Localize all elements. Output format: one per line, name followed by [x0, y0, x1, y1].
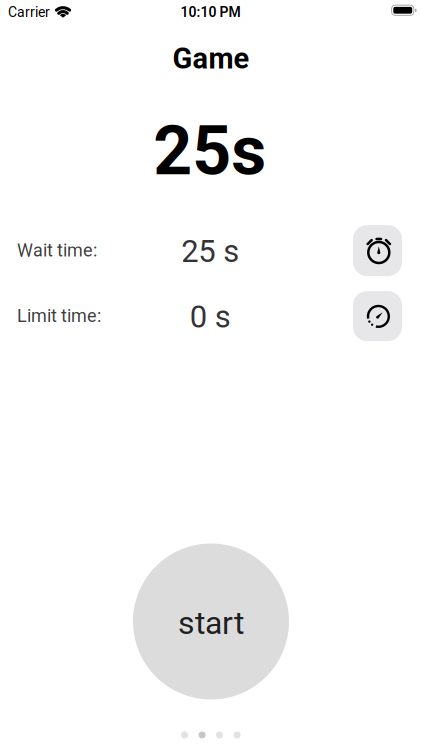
- button[interactable]: Set limit time: [353, 291, 402, 341]
- button[interactable]: start: [133, 543, 289, 699]
- staticText: Limit time:: [17, 305, 101, 326]
- staticText: Game: [172, 42, 249, 75]
- staticText: Carrier: [8, 4, 50, 20]
- staticText: 25 s: [181, 234, 239, 269]
- staticText: 10:10 PM: [180, 4, 240, 20]
- button[interactable]: Set wait time: [353, 225, 402, 276]
- staticText: 0 s: [190, 299, 231, 334]
- button[interactable]: Page 2 of 4: [181, 731, 241, 738]
- staticText: Wait time:: [17, 240, 97, 261]
- staticText: start: [178, 605, 244, 641]
- staticText: 25s: [153, 112, 266, 190]
